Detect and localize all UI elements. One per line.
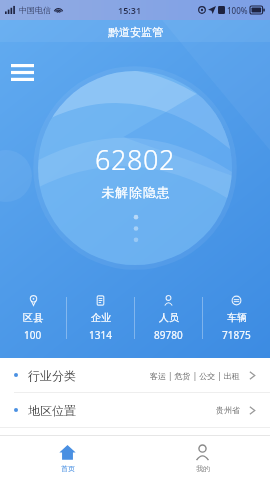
button[interactable]: 区县 [0, 289, 66, 347]
staticText: 贵州省 [216, 405, 240, 415]
button[interactable]: Menu [11, 54, 47, 90]
staticText: 1314 [89, 328, 112, 342]
staticText: 71875 [222, 328, 251, 342]
staticText: 62802 [95, 141, 176, 178]
button[interactable]: 企业 [67, 289, 134, 347]
staticText: 客运 | 危货 | 公交 | 出租 [150, 370, 240, 381]
button[interactable]: 车辆 [203, 289, 270, 347]
staticText: 89780 [154, 328, 183, 342]
button[interactable]: 地区位置 [0, 393, 270, 427]
staticText: 黔道安监管 [108, 25, 163, 39]
staticText: 区县 [23, 311, 43, 324]
staticText: 中国电信 [19, 5, 51, 15]
button[interactable]: 行业分类 [0, 358, 270, 392]
staticText: 车辆 [227, 311, 247, 324]
staticText: 未解除隐患 [101, 184, 170, 200]
button[interactable]: 人员 [135, 289, 202, 347]
staticText: 100% [227, 5, 248, 16]
staticText: 人员 [159, 311, 179, 324]
staticText: 企业 [91, 311, 111, 324]
staticText: 100 [24, 328, 42, 342]
staticText: 15:31 [118, 4, 142, 16]
staticText: 行业分类 [28, 368, 76, 383]
staticText: 地区位置 [28, 403, 76, 418]
button[interactable]: 我的 [135, 436, 270, 480]
staticText: 我的 [196, 464, 210, 473]
button[interactable]: 首页 [0, 436, 135, 480]
staticText: 首页 [61, 464, 75, 473]
